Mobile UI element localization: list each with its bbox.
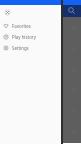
button[interactable] — [0, 17, 81, 38]
button[interactable]: Settings — [0, 42, 61, 53]
staticText: Favorites — [12, 23, 31, 29]
staticText: Settings — [12, 45, 29, 51]
button[interactable]: Play history — [0, 31, 61, 42]
staticText: Play history — [12, 34, 36, 40]
button[interactable] — [0, 101, 81, 122]
button[interactable]: Favorites — [0, 20, 61, 31]
button[interactable] — [0, 80, 81, 101]
button[interactable] — [0, 122, 81, 143]
button[interactable] — [0, 38, 81, 59]
button[interactable]: Close — [3, 8, 12, 17]
button[interactable]: Search — [67, 6, 76, 15]
button[interactable] — [0, 59, 81, 80]
